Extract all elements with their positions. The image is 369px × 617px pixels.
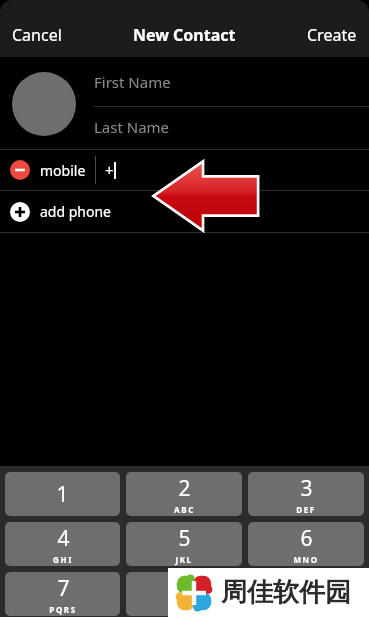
staticText: GHI bbox=[53, 554, 73, 565]
button[interactable]: 1 bbox=[5, 472, 120, 516]
button[interactable]: Remove mobile phone bbox=[10, 160, 30, 180]
staticText: 周佳软件园 bbox=[221, 576, 351, 609]
staticText: Last Name bbox=[94, 117, 170, 137]
staticText: 8 bbox=[178, 574, 191, 603]
button[interactable]: 5 bbox=[126, 522, 242, 566]
staticText: Cancel bbox=[12, 24, 62, 46]
button[interactable]: Create bbox=[295, 18, 369, 52]
button[interactable]: 7 bbox=[5, 572, 120, 616]
staticText: JKL bbox=[175, 554, 193, 565]
staticText: 9 bbox=[300, 574, 313, 603]
button[interactable]: Add contact photo bbox=[12, 72, 76, 136]
staticText: 5 bbox=[178, 524, 191, 553]
button[interactable]: Cancel bbox=[0, 18, 74, 52]
staticText: + bbox=[105, 160, 114, 180]
staticText: add phone bbox=[40, 202, 111, 221]
button[interactable]: add phone bbox=[0, 191, 369, 232]
staticText: 6 bbox=[300, 524, 313, 553]
button[interactable]: Last Name bbox=[94, 107, 369, 147]
staticText: New Contact bbox=[133, 24, 236, 46]
staticText: ABC bbox=[174, 504, 195, 515]
staticText: DEF bbox=[296, 504, 316, 515]
staticText: TUV bbox=[174, 604, 195, 615]
button[interactable]: 2 bbox=[126, 472, 242, 516]
button[interactable]: 3 bbox=[248, 472, 364, 516]
staticText: Create bbox=[307, 24, 357, 46]
staticText: mobile bbox=[40, 161, 86, 180]
button[interactable]: Remove mobile phone bbox=[0, 150, 369, 190]
staticText: 4 bbox=[57, 524, 70, 553]
staticText: MNO bbox=[293, 554, 319, 565]
button[interactable]: First Name bbox=[94, 57, 369, 107]
staticText: 3 bbox=[300, 474, 313, 503]
button[interactable]: 9 bbox=[248, 572, 364, 616]
button[interactable]: 4 bbox=[5, 522, 120, 566]
staticText: WXYZ bbox=[291, 604, 321, 615]
staticText: PQRS bbox=[49, 604, 77, 615]
button[interactable]: 8 bbox=[126, 572, 242, 616]
staticText: 1 bbox=[56, 480, 69, 509]
staticText: 2 bbox=[178, 474, 191, 503]
button[interactable]: 6 bbox=[248, 522, 364, 566]
staticText: First Name bbox=[94, 72, 171, 92]
staticText: 7 bbox=[57, 574, 70, 603]
